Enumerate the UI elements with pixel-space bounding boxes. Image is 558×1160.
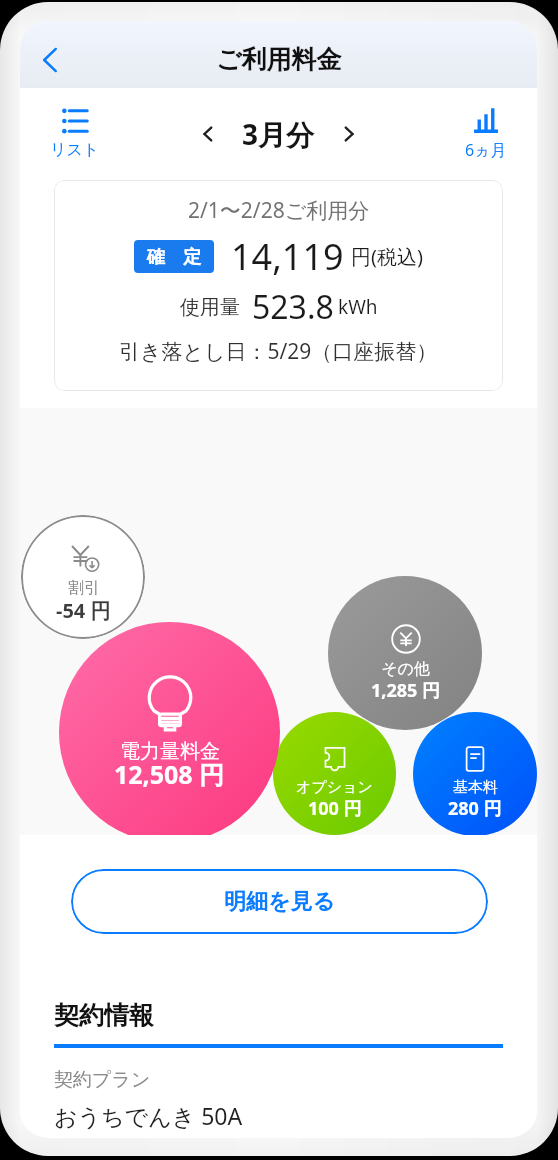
button[interactable]: Back	[26, 36, 74, 84]
staticText: 100 円	[308, 796, 362, 821]
staticText: 3月分	[242, 115, 315, 153]
staticText: 円(税込)	[351, 243, 423, 270]
button[interactable]: 割引	[21, 515, 145, 639]
button[interactable]: オプション	[273, 712, 396, 835]
staticText: 基本料	[453, 778, 498, 797]
staticText: 契約情報	[54, 1000, 154, 1031]
button[interactable]: リスト	[42, 104, 108, 164]
staticText: おうちでんき 50A	[54, 1100, 243, 1131]
staticText: 引き落とし日：5/29（口座振替）	[119, 337, 438, 366]
staticText: 契約プラン	[54, 1068, 151, 1092]
button[interactable]: その他	[328, 576, 482, 730]
staticText: ご利用料金	[216, 44, 342, 75]
staticText: 12,508 円	[114, 757, 225, 791]
button[interactable]: 基本料	[413, 712, 537, 836]
button[interactable]: 電力量料金	[59, 622, 280, 843]
staticText: 使用量	[180, 295, 240, 320]
staticText: リスト	[50, 140, 100, 160]
staticText: 14,119	[231, 232, 344, 281]
button[interactable]: 明細を見る	[71, 869, 488, 934]
staticText: kWh	[338, 294, 378, 320]
button[interactable]: Next month	[328, 113, 370, 155]
staticText: 確 定	[147, 244, 201, 269]
staticText: -54 円	[56, 597, 111, 624]
button[interactable]: Previous month	[187, 113, 229, 155]
staticText: オプション	[296, 778, 373, 797]
staticText: 1,285 円	[371, 678, 440, 703]
staticText: 6ヵ月	[465, 139, 507, 161]
staticText: 電力量料金	[120, 739, 220, 764]
staticText: その他	[381, 659, 430, 679]
staticText: 割引	[68, 578, 100, 598]
staticText: 2/1〜2/28ご利用分	[188, 196, 370, 225]
staticText: 280 円	[448, 796, 502, 821]
button[interactable]: 6ヵ月	[457, 103, 515, 165]
staticText: 明細を見る	[224, 888, 336, 916]
staticText: 523.8	[252, 285, 334, 329]
